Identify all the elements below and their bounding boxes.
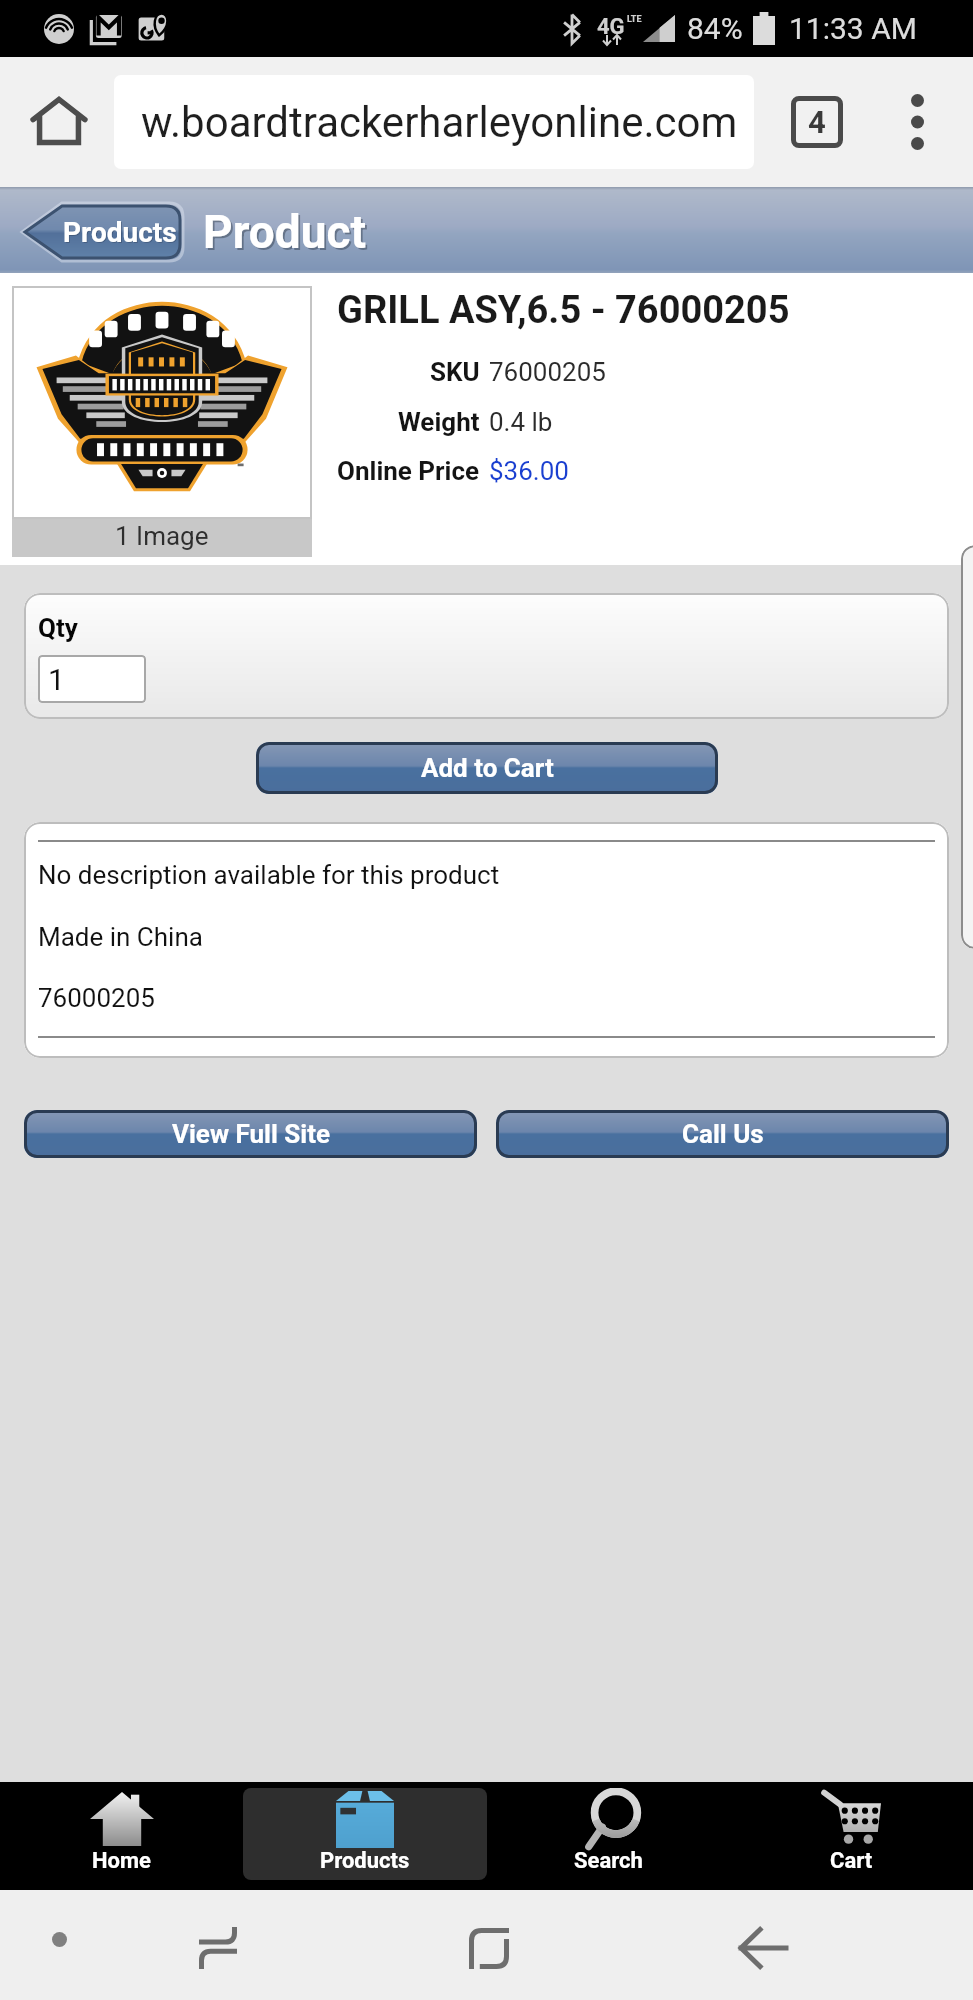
staticText: 1 Image bbox=[115, 521, 209, 551]
button[interactable]: Home bbox=[0, 1788, 243, 1880]
staticText: Made in China bbox=[38, 922, 203, 952]
staticText: $36.00 bbox=[489, 456, 569, 486]
button[interactable]: Home page bbox=[20, 82, 98, 160]
button[interactable]: Tabs bbox=[778, 83, 856, 161]
button[interactable]: 1 bbox=[38, 655, 146, 703]
button[interactable]: Back bbox=[724, 1910, 800, 1986]
staticText: 0.4 lb bbox=[489, 407, 553, 437]
staticText: Products bbox=[63, 216, 177, 249]
staticText: View Full Site bbox=[172, 1119, 330, 1149]
staticText: Products bbox=[64, 217, 178, 250]
staticText: 1 bbox=[48, 662, 65, 697]
staticText: 11:33 AM bbox=[789, 11, 917, 46]
staticText: No description available for this produc… bbox=[38, 860, 500, 890]
staticText: Home bbox=[92, 1848, 151, 1874]
staticText: Product bbox=[203, 205, 366, 259]
staticText: Online Price bbox=[337, 456, 480, 486]
staticText: 84% bbox=[687, 11, 743, 46]
staticText: GRILL ASY,6.5 - 76000205 bbox=[337, 288, 790, 333]
button[interactable]: w.boardtrackerharleyonline.com bbox=[114, 75, 754, 169]
button[interactable]: Search bbox=[487, 1788, 730, 1880]
button[interactable]: Home bbox=[451, 1910, 527, 1986]
staticText: 76000205 bbox=[489, 357, 606, 387]
staticText: 4G bbox=[597, 14, 625, 40]
staticText: Qty bbox=[38, 613, 78, 643]
staticText: Search bbox=[574, 1848, 643, 1874]
staticText: Cart bbox=[830, 1848, 873, 1874]
button[interactable]: More options bbox=[878, 83, 956, 161]
staticText: Weight bbox=[398, 407, 480, 437]
button[interactable]: Products bbox=[243, 1788, 487, 1880]
button[interactable]: Call Us bbox=[496, 1110, 949, 1158]
staticText: 4 bbox=[808, 104, 826, 140]
button[interactable]: Add to Cart bbox=[256, 742, 718, 794]
staticText: Add to Cart bbox=[421, 753, 554, 783]
button[interactable]: Recent apps bbox=[180, 1910, 256, 1986]
staticText: LTE bbox=[627, 14, 642, 25]
button[interactable]: View Full Site bbox=[24, 1110, 477, 1158]
staticText: Call Us bbox=[682, 1119, 764, 1149]
button[interactable]: Cart bbox=[730, 1788, 973, 1880]
button[interactable]: Products bbox=[18, 202, 184, 262]
staticText: w.boardtrackerharleyonline.com bbox=[141, 98, 738, 147]
staticText: Product bbox=[205, 207, 368, 261]
staticText: 76000205 bbox=[38, 983, 155, 1013]
staticText: SKU bbox=[430, 357, 480, 387]
staticText: Products bbox=[320, 1848, 410, 1874]
